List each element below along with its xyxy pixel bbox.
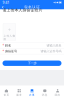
button[interactable]: Upload ID photo [3, 23, 16, 40]
staticText: 上传人像面 [3, 34, 15, 41]
staticText: 请输入证件号码 [40, 49, 61, 53]
button[interactable]: 我的 [51, 87, 64, 99]
staticText: * [2, 49, 4, 53]
staticText: 姓名 [5, 44, 11, 47]
button[interactable]: 办事 [26, 87, 38, 99]
staticText: 我的 [55, 93, 61, 96]
staticText: 服务 [16, 93, 22, 96]
button[interactable]: * [0, 43, 64, 48]
staticText: 办事 [29, 93, 35, 96]
staticText: 9:41 [2, 0, 9, 5]
button[interactable]: 消息 [38, 87, 51, 99]
staticText: 实名认证 [24, 5, 40, 10]
staticText: 消息 [42, 93, 48, 96]
staticText: 首页 [3, 93, 9, 96]
button[interactable]: Back [0, 5, 6, 9]
staticText: 下一步 [27, 61, 36, 65]
button[interactable]: 服务 [13, 87, 26, 99]
staticText: 请输入姓名 [46, 44, 61, 47]
staticText: 身份证号 [5, 49, 17, 53]
button[interactable]: * [0, 48, 64, 54]
button[interactable]: 首页 [0, 87, 13, 99]
staticText: 请上传本人身份证照片 [2, 8, 42, 13]
staticText: * [2, 43, 4, 48]
button[interactable]: 下一步 [2, 60, 61, 66]
